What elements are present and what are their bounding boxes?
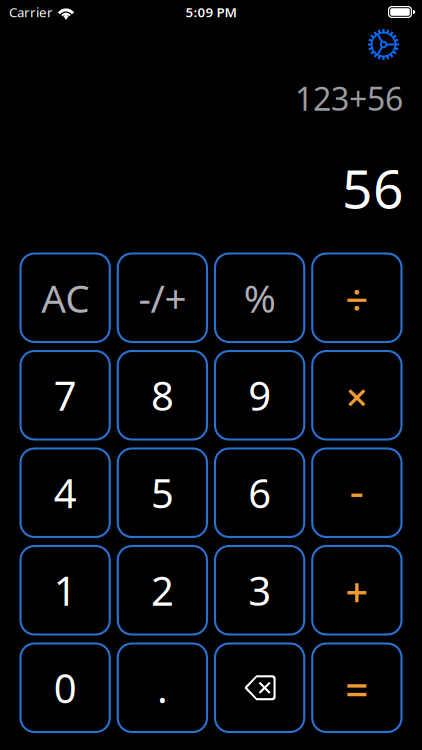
staticText: AC xyxy=(41,272,89,323)
staticText: Carrier xyxy=(9,3,53,21)
button[interactable]: Delete xyxy=(215,643,304,732)
button[interactable]: Equals xyxy=(312,643,401,732)
staticText: 1 xyxy=(54,564,77,617)
staticText: 0 xyxy=(54,661,77,714)
staticText: 2 xyxy=(151,564,174,617)
staticText: 8 xyxy=(151,369,174,422)
button[interactable]: AC xyxy=(20,253,110,342)
staticText: % xyxy=(244,272,276,323)
staticText: 3 xyxy=(248,564,271,617)
button[interactable]: 8 xyxy=(118,351,207,439)
staticText: -/+ xyxy=(138,272,186,323)
button[interactable]: 6 xyxy=(215,448,304,537)
button[interactable]: 2 xyxy=(118,546,207,634)
staticText: 9 xyxy=(248,369,271,422)
button[interactable]: Subtract xyxy=(312,448,401,537)
button[interactable]: 5 xyxy=(118,448,207,537)
button[interactable]: 4 xyxy=(20,448,110,537)
button[interactable]: 1 xyxy=(20,546,110,634)
button[interactable]: 3 xyxy=(215,546,304,634)
button[interactable]: Multiply xyxy=(312,351,401,439)
staticText: 5:09 PM xyxy=(185,3,236,21)
button[interactable]: Settings xyxy=(368,29,399,60)
button[interactable]: . xyxy=(118,643,207,732)
button[interactable]: Add xyxy=(312,546,401,634)
staticText: . xyxy=(157,661,168,714)
button[interactable]: -/+ xyxy=(118,253,207,342)
staticText: 4 xyxy=(54,466,77,519)
staticText: 6 xyxy=(248,466,271,519)
button[interactable]: % xyxy=(215,253,304,342)
button[interactable]: Divide xyxy=(312,253,401,342)
staticText: 7 xyxy=(54,369,77,422)
staticText: 123+56 xyxy=(295,77,403,119)
staticText: 5 xyxy=(151,466,174,519)
button[interactable]: 9 xyxy=(215,351,304,439)
staticText: 56 xyxy=(342,152,404,223)
button[interactable]: 0 xyxy=(20,643,110,732)
button[interactable]: 7 xyxy=(20,351,110,439)
